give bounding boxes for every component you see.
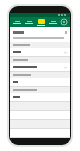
button[interactable] <box>10 72 70 87</box>
button[interactable] <box>10 87 70 102</box>
button[interactable] <box>10 57 70 72</box>
button[interactable] <box>11 17 23 27</box>
button[interactable]: Configurações <box>59 17 69 27</box>
button[interactable] <box>35 17 47 27</box>
button[interactable] <box>10 42 70 57</box>
button[interactable] <box>47 17 59 27</box>
button[interactable] <box>23 17 35 27</box>
